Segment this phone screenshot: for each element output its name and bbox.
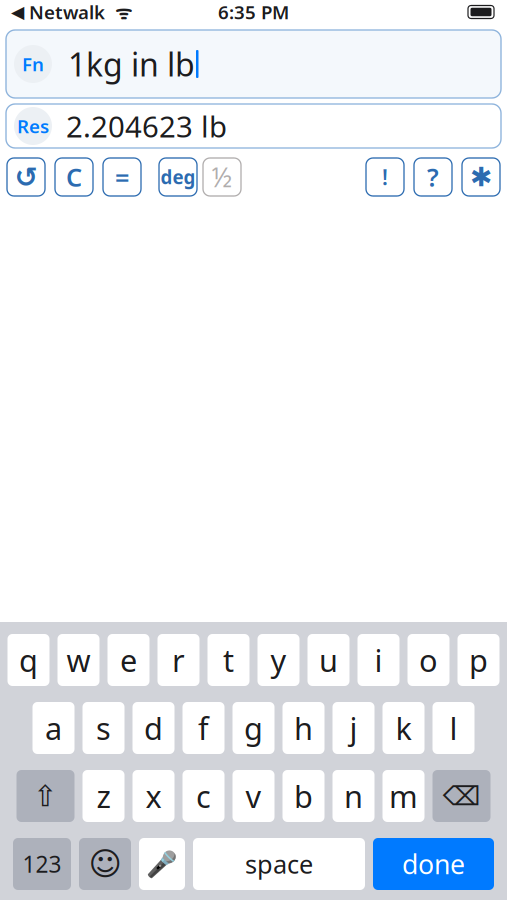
staticText: n [344, 776, 363, 816]
staticText: Fn [22, 52, 44, 76]
button[interactable]: k [382, 702, 424, 754]
button[interactable]: n [332, 770, 374, 822]
staticText: w [66, 640, 90, 680]
staticText: k [395, 708, 411, 748]
button[interactable]: a [32, 702, 74, 754]
button[interactable]: done [373, 838, 494, 890]
button[interactable]: space [193, 838, 365, 890]
button[interactable]: Numbers [13, 838, 71, 890]
button[interactable]: Feedback [366, 158, 404, 196]
button[interactable] [159, 158, 197, 196]
button[interactable]: t [207, 634, 249, 686]
button[interactable]: d [132, 702, 174, 754]
button[interactable]: f [182, 702, 224, 754]
staticText: ⌫ [442, 781, 480, 811]
staticText: y [270, 640, 286, 680]
staticText: space [245, 847, 313, 881]
staticText: = [115, 160, 129, 194]
staticText: ? [427, 160, 439, 194]
staticText: 6:35 PM [218, 0, 289, 24]
staticText: 1kg in lb [68, 43, 195, 85]
staticText: c [196, 776, 211, 816]
button[interactable]: z [82, 770, 124, 822]
button[interactable]: Emoji [79, 838, 131, 890]
staticText: x [145, 776, 161, 816]
staticText: ☺ [88, 846, 121, 882]
button[interactable]: x [132, 770, 174, 822]
staticText: done [402, 846, 465, 882]
button[interactable]: Help [414, 158, 452, 196]
button[interactable]: h [282, 702, 324, 754]
staticText: p [469, 640, 488, 680]
staticText: 2.204623 lb [66, 106, 227, 145]
staticText: j [349, 708, 357, 748]
button[interactable]: p [457, 634, 499, 686]
staticText: Netwalk [24, 0, 105, 24]
button[interactable]: w [57, 634, 99, 686]
staticText: t [223, 640, 234, 680]
button[interactable]: e [107, 634, 149, 686]
staticText: C [66, 160, 82, 194]
staticText: ! [382, 163, 388, 191]
staticText: ⇧ [33, 779, 58, 813]
button[interactable]: j [332, 702, 374, 754]
button[interactable]: r [157, 634, 199, 686]
button[interactable]: g [232, 702, 274, 754]
button[interactable]: Delete [432, 770, 490, 822]
staticText: Res [17, 114, 49, 138]
staticText: l [449, 708, 457, 748]
button[interactable] [203, 158, 241, 196]
staticText: v [245, 776, 261, 816]
button[interactable]: y [257, 634, 299, 686]
button[interactable]: Settings [462, 158, 500, 196]
button[interactable]: Res [6, 104, 501, 148]
staticText: a [45, 708, 62, 748]
button[interactable] [103, 158, 141, 196]
button[interactable] [55, 158, 93, 196]
staticText: q [19, 640, 38, 680]
button[interactable]: History [7, 158, 45, 196]
staticText: ↺ [14, 161, 37, 193]
staticText: ✱ [470, 162, 492, 192]
staticText: u [319, 640, 338, 680]
staticText: 123 [22, 849, 61, 879]
staticText: m [389, 776, 418, 816]
button[interactable]: Dictate [139, 838, 185, 890]
staticText: o [419, 640, 438, 680]
staticText: z [96, 776, 110, 816]
button[interactable]: l [432, 702, 474, 754]
button[interactable]: Shift [16, 770, 74, 822]
button[interactable]: u [307, 634, 349, 686]
staticText: ◀ [11, 2, 24, 22]
staticText: ½ [211, 159, 232, 195]
staticText: d [144, 708, 163, 748]
button[interactable]: i [357, 634, 399, 686]
staticText: f [198, 708, 209, 748]
button[interactable]: Fn [6, 30, 501, 98]
button[interactable]: v [232, 770, 274, 822]
staticText: 🎤 [146, 849, 178, 878]
button[interactable]: c [182, 770, 224, 822]
staticText: b [294, 776, 313, 816]
staticText: g [244, 708, 263, 748]
staticText: deg [160, 165, 195, 189]
staticText: i [374, 640, 382, 680]
staticText: r [172, 640, 185, 680]
button[interactable]: s [82, 702, 124, 754]
button[interactable]: m [382, 770, 424, 822]
button[interactable]: q [7, 634, 49, 686]
button[interactable]: o [407, 634, 449, 686]
staticText: s [96, 708, 111, 748]
staticText: ᯤ [105, 0, 132, 24]
staticText: e [120, 640, 137, 680]
staticText: h [294, 708, 313, 748]
button[interactable]: b [282, 770, 324, 822]
